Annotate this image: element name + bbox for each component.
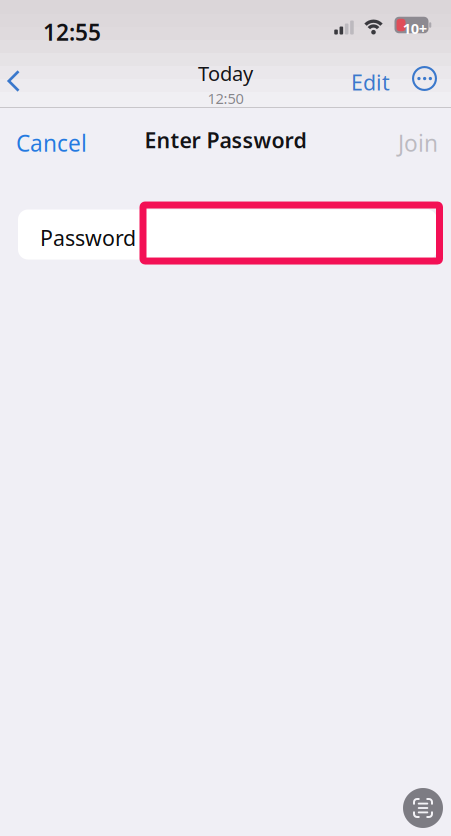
staticText: 12:50 <box>207 89 243 108</box>
staticText: 10+ <box>403 19 427 38</box>
staticText: Cancel <box>16 128 87 158</box>
button[interactable]: Edit <box>351 68 390 96</box>
button[interactable]: Back <box>7 70 21 92</box>
button[interactable]: Join <box>398 128 438 158</box>
staticText: Today <box>198 60 253 87</box>
button[interactable]: Detect text <box>403 788 443 828</box>
staticText: Enter Password <box>144 126 306 154</box>
button[interactable]: Cancel <box>16 128 87 158</box>
button[interactable]: Password <box>18 209 437 259</box>
button[interactable]: More <box>412 66 437 91</box>
staticText: Join <box>398 128 438 158</box>
staticText: Edit <box>351 68 390 96</box>
staticText: Password <box>40 223 136 252</box>
staticText: 12:55 <box>43 17 101 47</box>
